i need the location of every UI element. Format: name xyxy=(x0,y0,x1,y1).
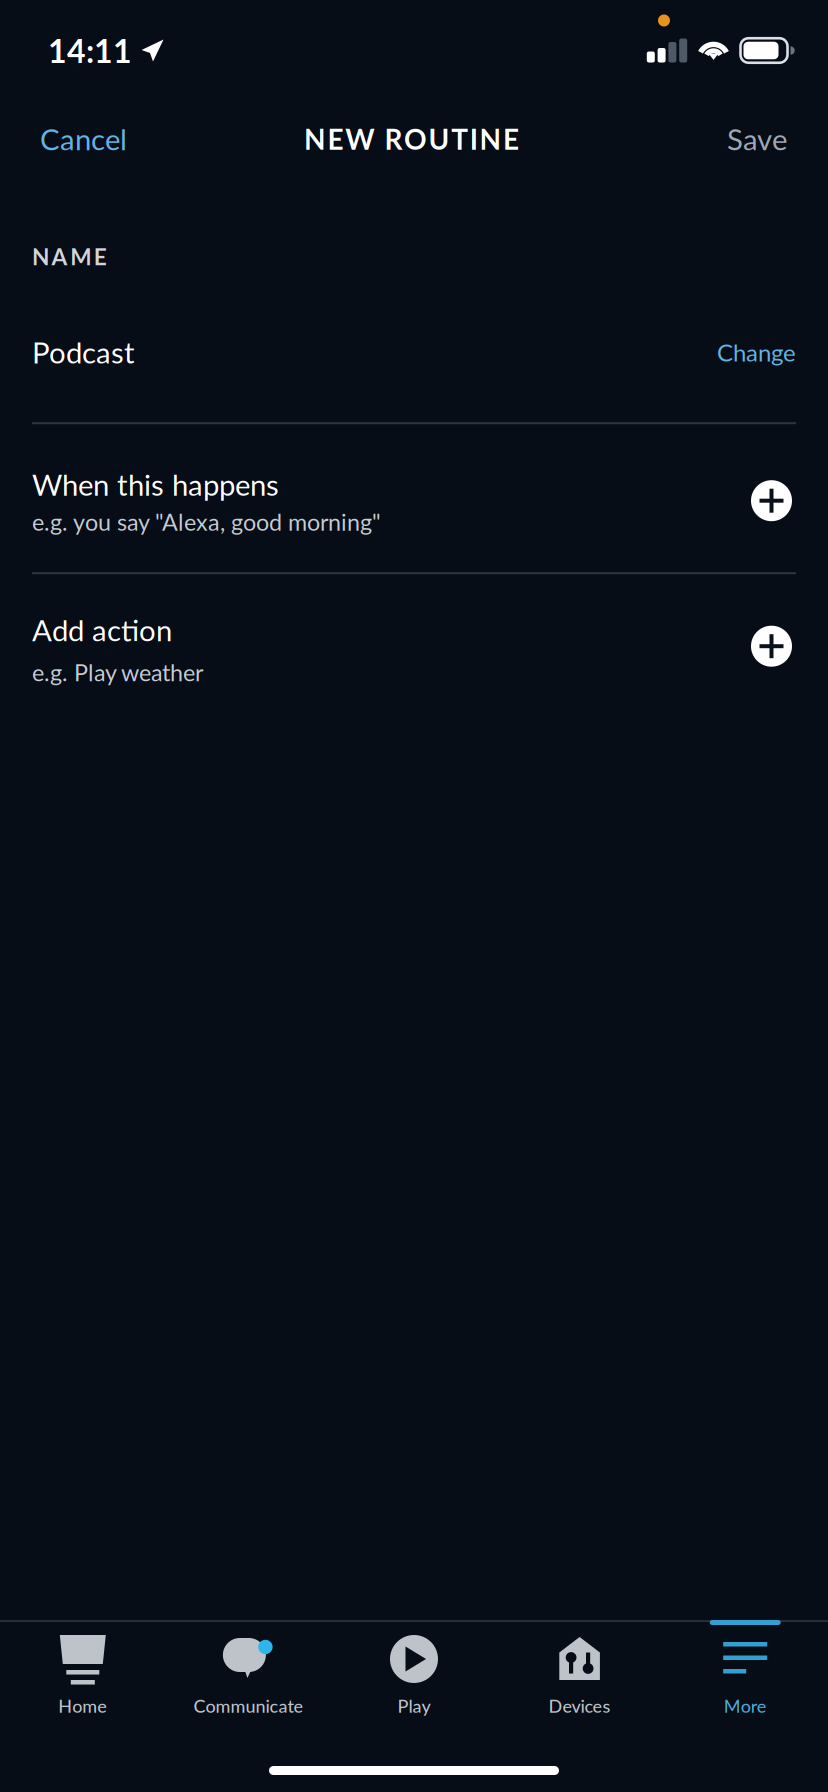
button[interactable]: Add When this happens xyxy=(751,480,792,521)
staticText: Play xyxy=(397,1695,430,1717)
button[interactable]: Communicate xyxy=(166,1622,331,1722)
staticText: e.g. you say "Alexa, good morning" xyxy=(32,508,381,536)
staticText: Change xyxy=(717,338,796,367)
staticText: Devices xyxy=(549,1695,611,1717)
staticText: 14:11 xyxy=(48,31,132,70)
button[interactable]: Add action xyxy=(0,576,828,726)
button[interactable]: Play xyxy=(331,1622,497,1722)
staticText: More xyxy=(724,1695,767,1717)
button[interactable]: Cancel xyxy=(0,101,151,177)
staticText: NAME xyxy=(32,243,107,270)
button[interactable]: Save xyxy=(703,101,828,177)
staticText: NEW ROUTINE xyxy=(304,122,519,156)
staticText: Podcast xyxy=(32,335,135,370)
staticText: Save xyxy=(727,121,787,157)
button[interactable]: Devices xyxy=(497,1622,662,1722)
button[interactable]: When this happens xyxy=(0,424,828,574)
staticText: Cancel xyxy=(40,121,127,157)
staticText: When this happens xyxy=(32,467,279,502)
button[interactable]: Add Add action xyxy=(751,626,792,667)
button[interactable]: More xyxy=(662,1622,828,1722)
staticText: Communicate xyxy=(193,1695,303,1717)
staticText: Home xyxy=(58,1695,107,1717)
button[interactable]: Home xyxy=(0,1622,166,1722)
staticText: Add action xyxy=(32,612,172,647)
button[interactable]: Podcast xyxy=(0,327,828,377)
staticText: e.g. Play weather xyxy=(32,658,203,686)
